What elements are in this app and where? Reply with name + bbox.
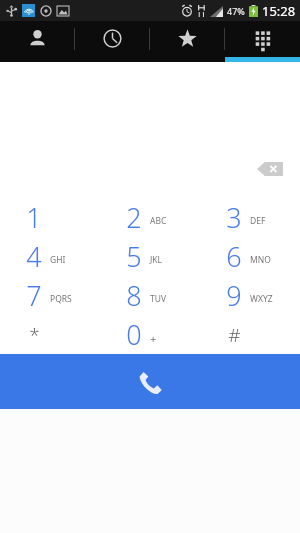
staticText: 0 [126,316,142,353]
button[interactable]: 6 [200,237,300,276]
staticText: WXYZ [250,293,273,305]
button[interactable]: 1 [0,198,100,237]
button[interactable]: Contacts [0,21,75,62]
staticText: * [29,322,40,348]
staticText: 7 [26,277,42,314]
button[interactable]: Backspace [248,154,292,184]
staticText: PQRS [50,293,72,305]
staticText: + [150,331,157,346]
button[interactable]: Recents [75,21,150,62]
staticText: TUV [150,293,167,305]
button[interactable]: 8 [100,276,200,315]
button[interactable]: # [200,315,300,354]
button[interactable]: 3 [200,198,300,237]
staticText: # [228,322,241,348]
staticText: 1 [26,199,42,236]
staticText: 4 [26,238,42,275]
button[interactable]: Call [0,354,300,409]
staticText: 3 [226,199,242,236]
staticText: JKL [150,254,163,266]
button[interactable]: 7 [0,276,100,315]
button[interactable]: 0 [100,315,200,354]
staticText: ABC [150,215,167,227]
staticText: 5 [126,238,142,275]
staticText: 15:28 [262,2,296,20]
staticText: MNO [250,254,271,266]
button[interactable]: 5 [100,237,200,276]
staticText: 8 [126,277,142,314]
staticText: 2 [126,199,142,236]
button[interactable]: * [0,315,100,354]
staticText: GHI [50,254,66,266]
button[interactable]: Favorites [150,21,225,62]
staticText: DEF [250,215,266,227]
button[interactable]: Keypad [225,21,300,62]
staticText: 9 [226,277,242,314]
button[interactable]: 2 [100,198,200,237]
staticText: 47% [227,5,245,17]
button[interactable]: 9 [200,276,300,315]
button[interactable]: 4 [0,237,100,276]
staticText: 6 [226,238,242,275]
